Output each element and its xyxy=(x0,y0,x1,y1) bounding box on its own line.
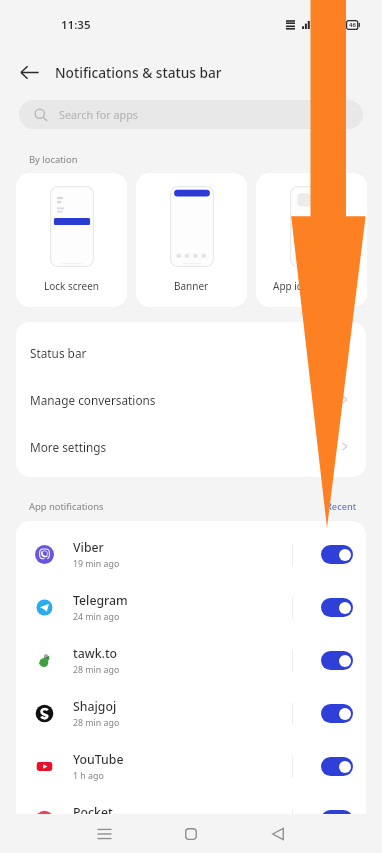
staticText: Recent xyxy=(326,500,357,513)
staticText: 24 min ago xyxy=(73,611,120,623)
button[interactable]: More settings xyxy=(16,423,366,470)
staticText: 28 min ago xyxy=(73,664,120,676)
staticText: Viber xyxy=(73,539,104,556)
button[interactable]: Manage conversations xyxy=(16,376,366,423)
staticText: By location xyxy=(29,153,78,166)
button[interactable]: Viber xyxy=(16,528,366,581)
staticText: Shajgoj xyxy=(73,698,117,715)
button[interactable]: Search for apps xyxy=(19,100,363,129)
staticText: YouTube xyxy=(73,751,124,768)
button[interactable]: Pocket xyxy=(16,793,366,846)
button[interactable]: Recents xyxy=(90,820,118,848)
button[interactable]: Toggle Viber xyxy=(321,545,353,564)
button[interactable]: Lock screen xyxy=(16,173,127,307)
staticText: 19 min ago xyxy=(73,558,120,570)
staticText: Pocket xyxy=(73,804,113,821)
staticText: Manage conversations xyxy=(30,392,156,408)
staticText: 1 h ago xyxy=(73,770,104,782)
staticText: tawk.to xyxy=(73,645,118,662)
button[interactable]: YouTube xyxy=(16,740,366,793)
staticText: Banner xyxy=(174,279,209,293)
button[interactable]: Toggle Pocket xyxy=(321,810,353,829)
staticText: Notifications & status bar xyxy=(55,63,222,82)
button[interactable]: Home xyxy=(177,820,205,848)
button[interactable]: Toggle YouTube xyxy=(321,757,353,776)
button[interactable]: tawk.to xyxy=(16,634,366,687)
button[interactable]: Back xyxy=(11,54,47,90)
button[interactable]: Toggle Shajgoj xyxy=(321,704,353,723)
staticText: 46 xyxy=(349,21,356,29)
button[interactable]: Telegram xyxy=(16,581,366,634)
staticText: 2 h ago xyxy=(73,823,104,835)
staticText: Search for apps xyxy=(59,107,139,122)
button[interactable]: Recent xyxy=(326,500,357,513)
button[interactable]: Shajgoj xyxy=(16,687,366,740)
staticText: Telegram xyxy=(73,592,128,609)
staticText: More settings xyxy=(30,439,107,455)
button[interactable]: Status bar xyxy=(16,329,366,376)
button[interactable]: Toggle Telegram xyxy=(321,598,353,617)
staticText: App icon badges xyxy=(273,279,351,293)
staticText: Status bar xyxy=(30,345,87,361)
staticText: 11:35 xyxy=(61,17,91,33)
button[interactable]: Back xyxy=(264,820,292,848)
button[interactable]: Toggle tawk.to xyxy=(321,651,353,670)
staticText: 28 min ago xyxy=(73,717,120,729)
button[interactable]: Banner xyxy=(136,173,247,307)
staticText: App notifications xyxy=(29,500,104,513)
button[interactable]: App icon badges xyxy=(256,173,367,307)
staticText: Lock screen xyxy=(44,279,100,293)
